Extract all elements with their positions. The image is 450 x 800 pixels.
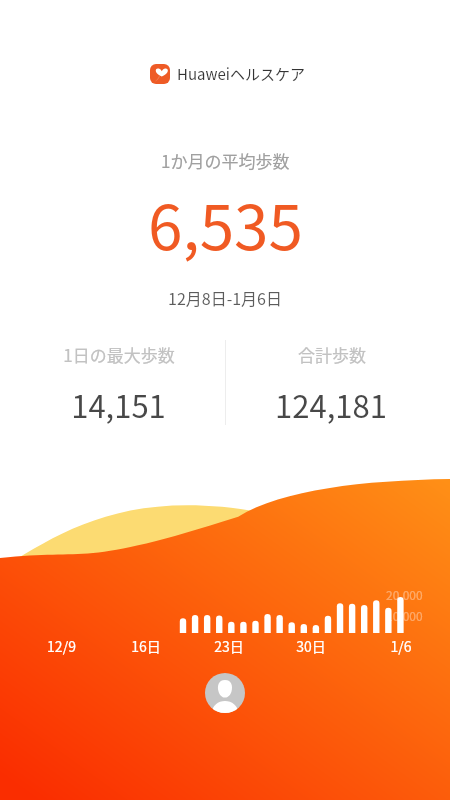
staticText: 合計歩数 [298, 342, 366, 367]
staticText: 23日 [214, 636, 244, 656]
button[interactable]: Huaweiヘルスケア [150, 63, 305, 85]
staticText: 124,181 [275, 382, 387, 427]
staticText: 1か月の平均歩数 [161, 148, 290, 173]
staticText: 1日の最大歩数 [63, 342, 175, 367]
staticText: 16日 [131, 636, 161, 656]
staticText: 20,000 [386, 586, 423, 603]
staticText: 14,151 [71, 382, 166, 427]
staticText: Huaweiヘルスケア [177, 63, 305, 85]
staticText: 1/6 [390, 636, 412, 656]
staticText: 10,000 [386, 607, 423, 624]
staticText: 12月8日-1月6日 [168, 286, 282, 309]
button[interactable]: Profile [205, 673, 245, 713]
staticText: 30日 [296, 636, 326, 656]
staticText: 12/9 [47, 636, 76, 656]
staticText: 6,535 [148, 178, 303, 268]
